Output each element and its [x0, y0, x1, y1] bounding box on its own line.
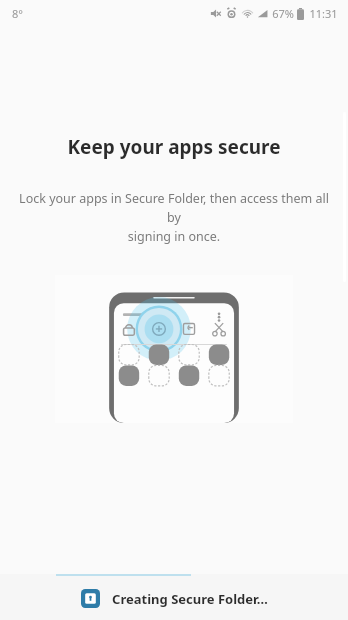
staticText: 67%	[272, 6, 294, 21]
staticText: Keep your apps secure	[67, 134, 281, 160]
staticText: Creating Secure Folder…	[112, 590, 268, 608]
staticText: 8°	[12, 6, 23, 21]
other: Secure Folder	[81, 589, 100, 608]
staticText: 11:31	[309, 6, 338, 21]
button[interactable]: Secure Folder	[0, 577, 348, 620]
staticText: Lock your apps in Secure Folder, then ac…	[14, 190, 334, 245]
